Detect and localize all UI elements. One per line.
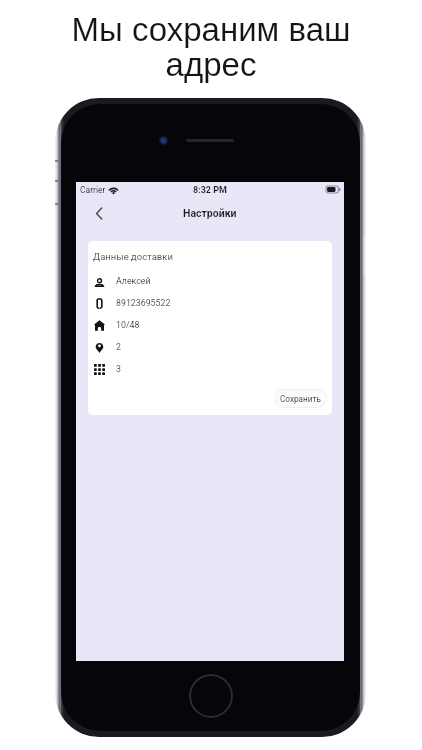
staticText: Настройки: [183, 207, 237, 219]
button[interactable]: Сохранить: [274, 389, 327, 408]
staticText: 2: [116, 342, 121, 352]
staticText: Алексей: [116, 276, 151, 286]
staticText: Сохранить: [280, 394, 321, 404]
staticText: 8:32 PM: [193, 185, 227, 196]
staticText: 3: [116, 364, 121, 374]
staticText: 89123695522: [116, 298, 171, 308]
staticText: Мы сохраним ваш адрес: [41, 11, 381, 83]
button[interactable]: Back: [90, 204, 108, 222]
staticText: Данные доставки: [93, 251, 173, 262]
staticText: 10/48: [116, 320, 140, 330]
staticText: Carrier: [80, 185, 106, 195]
